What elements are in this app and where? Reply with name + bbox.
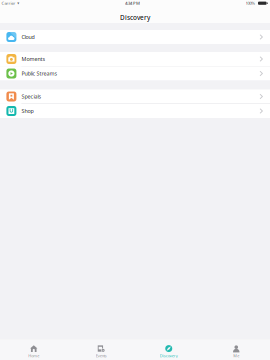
button[interactable]: Cloud	[0, 30, 270, 44]
staticText: Home	[28, 353, 39, 358]
button[interactable]: Public Streams	[0, 66, 270, 80]
staticText: Carrier	[2, 0, 16, 6]
staticText: Discovery	[120, 13, 150, 22]
staticText: Events	[96, 353, 107, 358]
staticText: Shop	[21, 107, 33, 115]
button[interactable]: Specials	[0, 89, 270, 103]
staticText: 4:34 PM	[125, 0, 140, 6]
staticText: Cloud	[21, 33, 34, 41]
staticText: Public Streams	[21, 70, 57, 77]
button[interactable]: Me	[202, 341, 270, 358]
button[interactable]: Home	[0, 341, 67, 358]
staticText: 100%	[246, 0, 256, 6]
button[interactable]: Discovery	[135, 341, 202, 358]
staticText: Discovery	[160, 353, 178, 358]
staticText: Moments	[21, 55, 45, 63]
staticText: ▾	[17, 1, 19, 6]
button[interactable]: Moments	[0, 52, 270, 66]
button[interactable]: Shop	[0, 104, 270, 118]
button[interactable]: Events	[67, 341, 135, 358]
staticText: Specials	[21, 93, 41, 100]
staticText: Me	[233, 353, 239, 358]
